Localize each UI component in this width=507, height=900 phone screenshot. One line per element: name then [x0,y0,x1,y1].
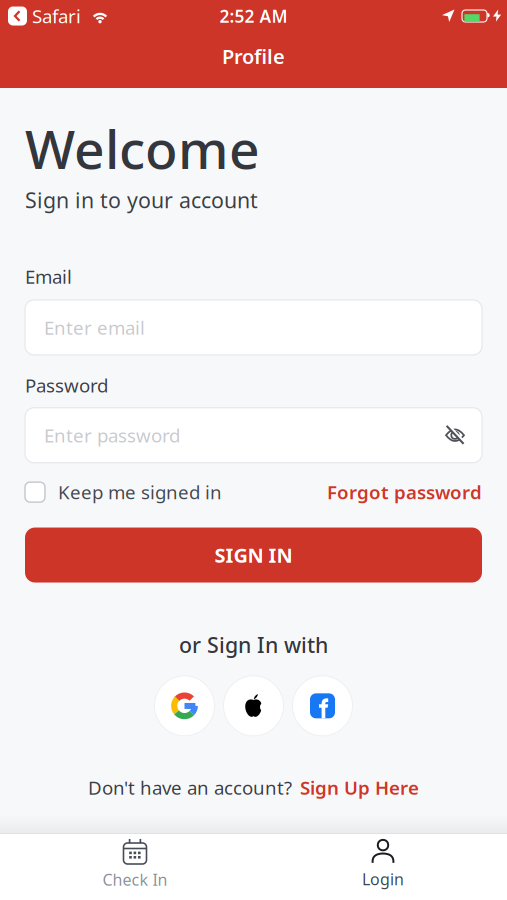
button[interactable]: Check In [11,838,259,890]
staticText: Keep me signed in [58,480,222,504]
staticText: Enter password [44,423,180,448]
staticText: Safari [32,4,81,28]
button[interactable]: Login [259,838,507,890]
button[interactable]: Sign in with Google [154,676,214,736]
button[interactable]: SIGN IN [25,527,482,582]
staticText: Email [25,264,72,289]
staticText: Enter email [44,315,145,340]
staticText: Sign in to your account [25,186,258,214]
button[interactable]: Forgot password [327,480,482,504]
staticText: SIGN IN [214,542,292,568]
staticText: Profile [222,43,285,70]
button[interactable]: Enter email [25,300,482,355]
button[interactable]: Enter password [25,408,482,463]
staticText: Don't have an account? [88,775,292,800]
button[interactable]: Keep me signed in [25,480,222,504]
button[interactable]: Back to Safari [8,4,81,28]
staticText: Check In [102,869,167,890]
button[interactable]: Sign in with Apple [223,676,283,736]
staticText: or Sign In with [179,630,328,659]
staticText: Password [25,373,108,398]
button[interactable]: Sign in with Facebook [292,676,352,736]
staticText: 2:52 AM [219,4,287,27]
staticText: Welcome [25,113,260,184]
staticText: Sign Up Here [300,775,419,800]
button[interactable]: Sign Up Here [300,775,419,800]
staticText: Forgot password [327,480,482,504]
staticText: Login [362,868,404,890]
